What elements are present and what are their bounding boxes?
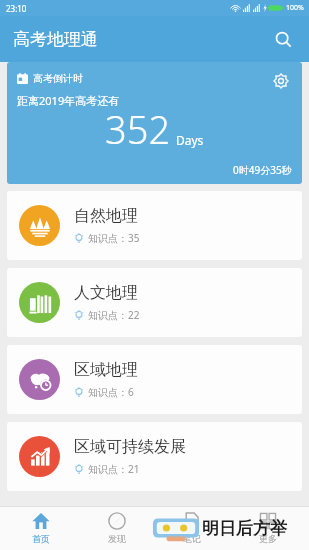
staticText: 23:10 [6, 3, 27, 14]
staticText: 352 [105, 103, 171, 155]
staticText: 发现 [108, 533, 126, 544]
button[interactable]: 区域可持续发展 [7, 422, 302, 491]
staticText: 区域地理 [74, 360, 138, 380]
staticText: 100% [286, 3, 304, 13]
button[interactable]: Search [267, 23, 299, 55]
staticText: 高考地理通 [13, 29, 98, 50]
button[interactable]: 更多 [233, 506, 303, 550]
staticText: 人文地理 [74, 283, 138, 303]
button[interactable]: 高考倒计时 [7, 62, 302, 184]
staticText: Days [176, 132, 204, 148]
staticText: 更多 [259, 533, 277, 544]
button[interactable]: 首页 [6, 506, 76, 550]
button[interactable]: 区域地理 [7, 345, 302, 414]
staticText: 笔记 [183, 533, 201, 544]
staticText: 高考倒计时 [33, 72, 83, 85]
button[interactable]: Settings [268, 68, 294, 94]
staticText: 首页 [32, 533, 50, 544]
staticText: 知识点：22 [88, 308, 140, 322]
staticText: 自然地理 [74, 206, 138, 226]
button[interactable]: 自然地理 [7, 191, 302, 260]
staticText: 0时49分35秒 [233, 163, 292, 177]
staticText: 知识点：21 [88, 462, 140, 476]
staticText: 知识点：35 [88, 231, 140, 245]
staticText: 知识点：6 [88, 385, 134, 399]
staticText: 明日后方举 [202, 518, 287, 539]
button[interactable]: 发现 [82, 506, 152, 550]
button[interactable]: 人文地理 [7, 268, 302, 337]
button[interactable]: 笔记 [157, 506, 227, 550]
staticText: 区域可持续发展 [74, 437, 186, 457]
staticText: 距离2019年高考还有 [17, 93, 120, 108]
